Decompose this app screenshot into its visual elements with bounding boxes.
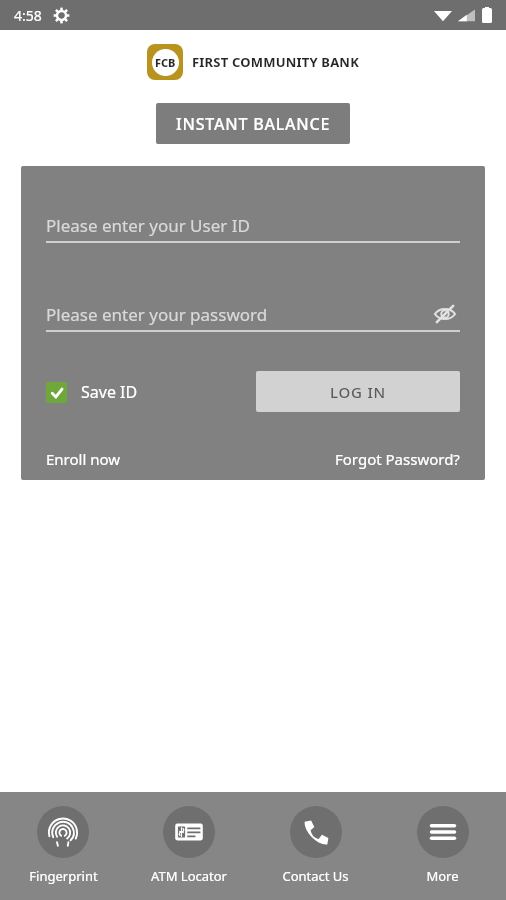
staticText: More [426, 867, 459, 885]
button[interactable]: More [379, 792, 506, 885]
button[interactable]: Contact Us [252, 792, 379, 885]
staticText: Please enter your User ID [46, 214, 250, 237]
button[interactable]: Show password [430, 299, 460, 329]
staticText: Contact Us [282, 867, 349, 885]
staticText: Forgot Password? [335, 449, 460, 469]
button[interactable]: Fingerprint [0, 792, 126, 885]
button[interactable]: INSTANT BALANCE [156, 103, 350, 144]
button[interactable]: Please enter your User ID [46, 209, 460, 241]
staticText: ATM Locator [151, 867, 227, 885]
staticText: LOG IN [330, 382, 387, 402]
staticText: Fingerprint [29, 867, 98, 885]
staticText: FCB [155, 55, 176, 70]
button[interactable]: ATM Locator [126, 792, 252, 885]
staticText: Enroll now [46, 449, 121, 469]
staticText: Save ID [81, 381, 138, 403]
staticText: FIRST COMMUNITY BANK [192, 53, 359, 71]
staticText: 4:58 [14, 6, 42, 25]
button[interactable]: Save ID [46, 381, 138, 403]
staticText: INSTANT BALANCE [176, 113, 331, 135]
button[interactable]: Forgot Password? [335, 449, 460, 469]
button[interactable]: LOG IN [256, 371, 460, 412]
button[interactable]: Enroll now [46, 449, 121, 469]
staticText: Please enter your password [46, 303, 268, 326]
